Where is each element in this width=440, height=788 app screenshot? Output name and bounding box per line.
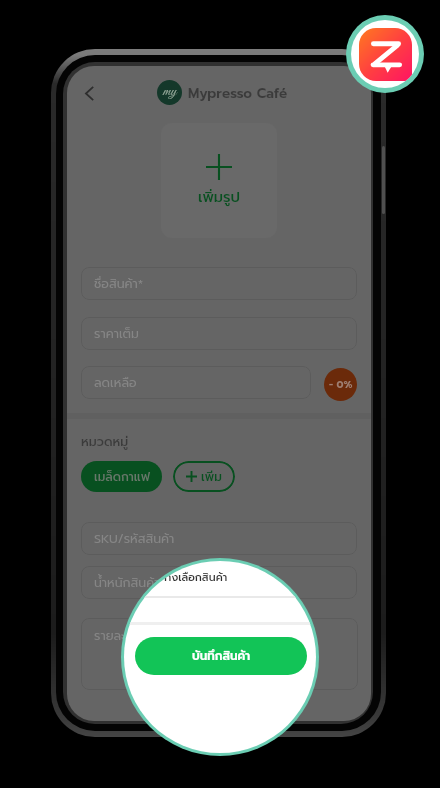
staticText: เพิ่ม: [201, 468, 222, 486]
staticText: รายละเอียดสินค้า: [94, 626, 182, 645]
button[interactable]: Back: [72, 78, 106, 108]
button[interactable]: เมล็ดกาแฟ: [81, 461, 162, 492]
staticText: ลดเหลือ: [94, 373, 137, 392]
staticText: บันทึกสินค้า: [192, 647, 251, 665]
staticText: เมล็ดกาแฟ: [94, 468, 150, 486]
button[interactable]: บันทึกสินค้า: [135, 637, 307, 675]
button[interactable]: รายละเอียดสินค้า: [81, 618, 358, 690]
button[interactable]: ราคาเต็ม: [81, 317, 357, 350]
staticText: ชื่อสินค้า*: [94, 274, 144, 293]
button[interactable]: ชื่อสินค้า*: [81, 267, 357, 300]
staticText: หมวดหมู่: [81, 432, 129, 451]
staticText: Mypresso Café: [188, 83, 288, 104]
button[interactable]: น้ำหนักสินค้า: [81, 566, 357, 599]
button[interactable]: SKU/รหัสสินค้า: [81, 522, 357, 555]
staticText: ราคาเต็ม: [94, 324, 139, 343]
button[interactable]: เพิ่มรูป: [161, 123, 277, 238]
staticText: - 0%: [329, 377, 353, 392]
button[interactable]: เพิ่ม: [173, 461, 235, 492]
staticText: my: [163, 82, 177, 101]
staticText: SKU/รหัสสินค้า: [94, 529, 175, 548]
button[interactable]: - 0%: [324, 368, 357, 401]
staticText: เพิ่มรูป: [161, 186, 277, 208]
button[interactable]: ลดเหลือ: [81, 366, 311, 399]
staticText: น้ำหนักสินค้า: [94, 573, 160, 592]
button[interactable]: ZORT logo: [346, 15, 424, 93]
staticText: ทางเลือกสินค้า: [160, 569, 228, 585]
